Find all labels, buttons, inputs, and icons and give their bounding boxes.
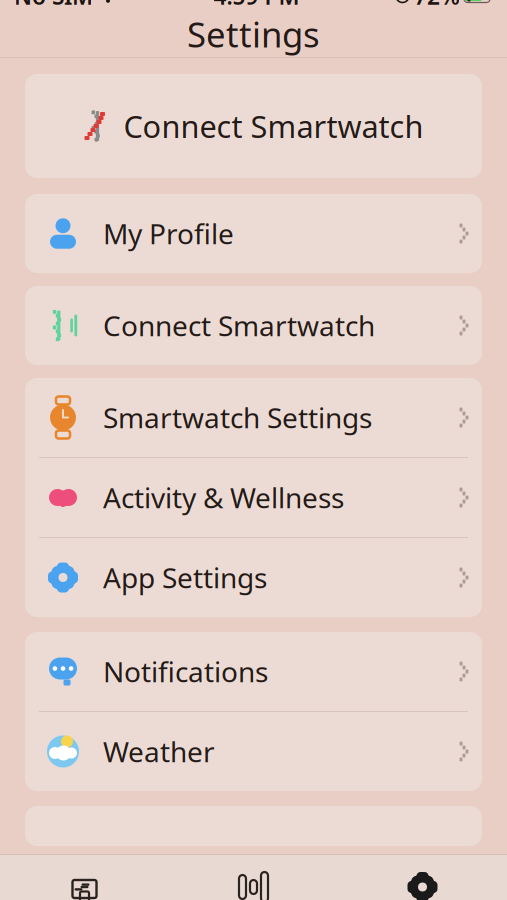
button[interactable]: Weather — [25, 712, 482, 791]
staticText: Settings — [187, 11, 320, 57]
button[interactable]: Activity & Wellness — [25, 458, 482, 537]
staticText: 4:59 PM — [213, 0, 299, 11]
staticText: Connect Smartwatch — [123, 106, 423, 146]
staticText: No SIM — [14, 0, 93, 11]
button[interactable]: Statistics — [169, 855, 338, 900]
button[interactable]: Connect Smartwatch — [25, 286, 482, 365]
staticText: 72% — [414, 0, 460, 11]
staticText: Notifications — [103, 653, 268, 690]
staticText: My Profile — [103, 215, 234, 252]
staticText: Connect Smartwatch — [103, 307, 375, 344]
button[interactable]: App Settings — [25, 538, 482, 617]
button[interactable]: Connect Smartwatch — [25, 74, 482, 178]
button[interactable]: Home — [0, 855, 169, 900]
staticText: Weather — [103, 733, 215, 770]
button[interactable]: My Profile — [25, 194, 482, 273]
button[interactable]: Smartwatch Settings — [25, 378, 482, 457]
staticText: Smartwatch Settings — [103, 399, 372, 436]
button[interactable]: Notifications — [25, 632, 482, 711]
staticText: Activity & Wellness — [103, 479, 344, 516]
button[interactable]: Settings — [338, 855, 507, 900]
staticText: App Settings — [103, 559, 267, 596]
